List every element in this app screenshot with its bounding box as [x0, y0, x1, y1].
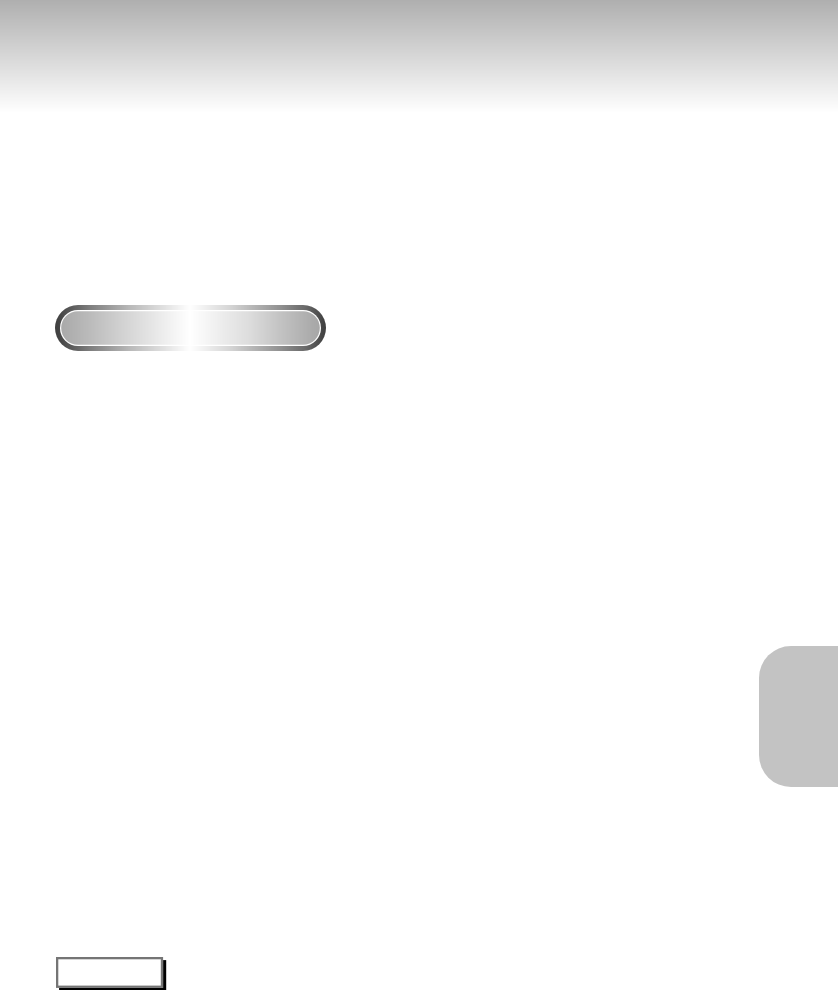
button[interactable]: Label [56, 957, 166, 990]
button[interactable]: Button [55, 305, 326, 351]
button[interactable]: Card [759, 646, 838, 787]
